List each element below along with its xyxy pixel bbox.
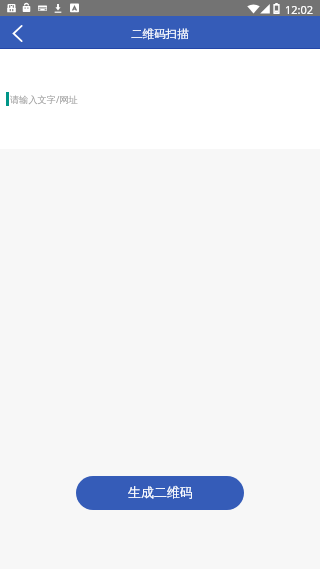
button[interactable]: Back	[0, 17, 34, 49]
button[interactable]: 请输入文字/网址	[0, 86, 320, 112]
staticText: 二维码扫描	[131, 27, 189, 41]
staticText: 请输入文字/网址	[10, 93, 78, 106]
staticText: 生成二维码	[128, 484, 193, 500]
button[interactable]: 生成二维码	[76, 476, 244, 510]
staticText: 12:02	[285, 2, 314, 17]
